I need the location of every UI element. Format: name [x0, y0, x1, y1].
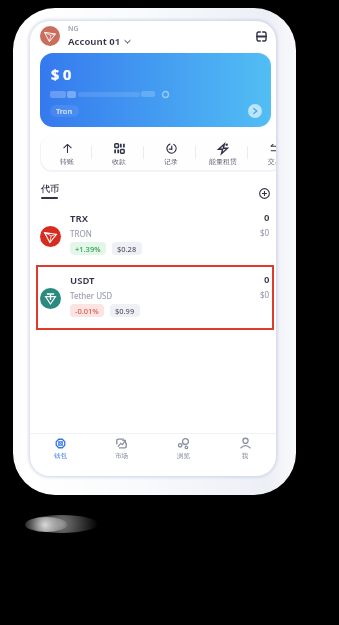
- button[interactable]: Scan: [252, 27, 270, 45]
- staticText: 钱包: [54, 452, 67, 460]
- staticText: +1.39%: [75, 244, 101, 254]
- staticText: 0: [264, 273, 270, 286]
- button[interactable]: 交易: [249, 135, 276, 170]
- staticText: 浏览: [177, 452, 190, 460]
- button[interactable]: TRX: [30, 206, 276, 268]
- button[interactable]: 我: [214, 433, 276, 476]
- button[interactable]: NG: [68, 24, 131, 48]
- button[interactable]: $ 0: [40, 53, 271, 127]
- staticText: $0.28: [117, 244, 137, 254]
- staticText: 代币: [41, 183, 59, 194]
- button[interactable]: USDT: [30, 268, 276, 330]
- button[interactable]: 浏览: [152, 433, 214, 476]
- staticText: Account 01: [68, 35, 121, 48]
- staticText: USDT: [70, 274, 95, 287]
- button[interactable]: 代币: [41, 183, 59, 199]
- staticText: 市场: [115, 452, 128, 460]
- button[interactable]: 收款: [93, 135, 145, 170]
- staticText: -0.01%: [75, 306, 99, 316]
- staticText: 记录: [164, 157, 178, 166]
- button[interactable]: 转账: [41, 135, 93, 170]
- button[interactable]: 记录: [145, 135, 197, 170]
- staticText: 交易: [268, 157, 276, 166]
- staticText: 转账: [60, 157, 74, 166]
- staticText: 能量租赁: [209, 157, 237, 166]
- button[interactable]: Open wallet: [248, 104, 262, 118]
- staticText: 0: [264, 211, 270, 224]
- button[interactable]: 钱包: [30, 433, 91, 476]
- staticText: $0: [260, 289, 270, 300]
- button[interactable]: 能量租赁: [197, 135, 249, 170]
- button[interactable]: 市场: [91, 433, 152, 476]
- staticText: $ 0: [51, 64, 72, 84]
- staticText: 我: [242, 452, 249, 460]
- staticText: $0: [260, 227, 270, 238]
- staticText: Tether USD: [70, 290, 113, 301]
- button[interactable]: Add token: [257, 186, 271, 200]
- staticText: TRON: [70, 228, 92, 239]
- staticText: 收款: [112, 157, 126, 166]
- staticText: TRX: [70, 212, 89, 225]
- staticText: $0.99: [115, 306, 135, 316]
- staticText: Tron: [56, 106, 73, 116]
- staticText: NG: [68, 24, 79, 34]
